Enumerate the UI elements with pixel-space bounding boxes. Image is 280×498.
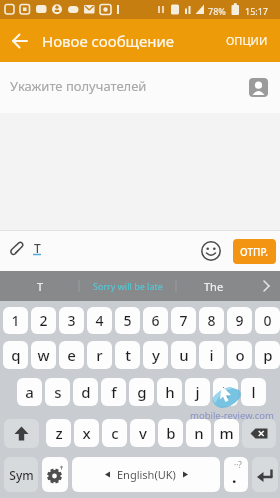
button[interactable]: z — [46, 419, 71, 447]
staticText: f — [111, 382, 117, 402]
button[interactable] — [4, 419, 39, 448]
button[interactable]: d — [73, 378, 98, 406]
staticText: y — [152, 345, 160, 365]
button[interactable]: 2 — [31, 307, 56, 334]
button[interactable]: e — [59, 341, 84, 369]
button[interactable]: p — [255, 341, 280, 369]
staticText: 9 — [235, 311, 244, 330]
button[interactable]: o — [227, 341, 252, 369]
button[interactable] — [252, 457, 278, 492]
button[interactable]: Укажите получателей — [0, 62, 280, 113]
button[interactable] — [4, 237, 30, 263]
staticText: j — [195, 382, 200, 402]
staticText: Sym — [9, 467, 34, 483]
staticText: 15:17 — [245, 5, 269, 17]
button[interactable]: y — [143, 341, 168, 369]
staticText: w — [37, 345, 50, 365]
staticText: d — [81, 382, 91, 402]
staticText: p — [263, 345, 273, 365]
staticText: 3 — [67, 311, 76, 330]
staticText: l — [251, 382, 256, 402]
button[interactable]: n — [186, 419, 211, 447]
button[interactable]: 8 — [199, 307, 224, 334]
staticText: mobile-review.com — [190, 409, 274, 422]
staticText: . — [232, 466, 237, 488]
staticText: 8 — [207, 311, 216, 330]
button[interactable]: x — [74, 419, 99, 447]
button[interactable]: a — [17, 378, 42, 406]
button[interactable]: u — [171, 341, 196, 369]
button[interactable]: 1 — [3, 307, 28, 334]
staticText: ОПЦИИ — [226, 33, 268, 48]
button[interactable]: k — [213, 378, 238, 406]
staticText: v — [139, 423, 147, 443]
staticText: k — [221, 382, 230, 402]
staticText: Sorry will be late — [93, 280, 163, 292]
staticText: ОТПР. — [240, 245, 269, 259]
button[interactable]: 6 — [143, 307, 168, 334]
staticText: 7 — [179, 311, 188, 330]
button[interactable]: j — [185, 378, 210, 406]
button[interactable]: f — [101, 378, 126, 406]
button[interactable]: m — [214, 419, 239, 447]
button[interactable]: 4 — [87, 307, 112, 334]
staticText: b — [166, 423, 176, 443]
staticText: The — [204, 279, 224, 294]
button[interactable]: T — [0, 271, 80, 301]
button[interactable]: The — [176, 271, 252, 301]
staticText: English(UK) — [117, 467, 176, 482]
button[interactable]: ОПЦИИ — [222, 29, 272, 52]
staticText: g — [137, 382, 147, 402]
staticText: s — [54, 382, 62, 402]
button[interactable] — [4, 25, 36, 57]
staticText: z — [55, 423, 63, 443]
button[interactable]: 3 — [59, 307, 84, 334]
button[interactable]: v — [130, 419, 155, 447]
button[interactable]: r — [87, 341, 112, 369]
button[interactable] — [42, 457, 68, 492]
staticText: o — [235, 345, 245, 365]
staticText: 1 — [11, 311, 20, 330]
button[interactable]: g — [129, 378, 154, 406]
button[interactable]: i — [199, 341, 224, 369]
staticText: 4 — [95, 311, 104, 330]
button[interactable] — [249, 78, 268, 97]
staticText: n — [194, 423, 204, 443]
button[interactable]: 5 — [115, 307, 140, 334]
staticText: 5 — [123, 311, 132, 330]
staticText: i — [209, 345, 214, 365]
button[interactable]: Sym — [4, 457, 38, 492]
button[interactable] — [197, 237, 225, 265]
staticText: Новое сообщение — [42, 31, 175, 51]
button[interactable]: s — [45, 378, 70, 406]
staticText: T — [34, 240, 41, 256]
button[interactable]: ОТПР. — [233, 239, 276, 264]
staticText: ··? — [234, 459, 242, 470]
button[interactable]: Sorry will be late — [80, 271, 176, 301]
staticText: m — [219, 423, 234, 443]
staticText: r — [96, 345, 103, 365]
staticText: 2 — [39, 311, 48, 330]
button[interactable]: ··? — [224, 457, 248, 492]
button[interactable]: English(UK) — [72, 457, 220, 492]
button[interactable]: h — [157, 378, 182, 406]
button[interactable]: w — [31, 341, 56, 369]
staticText: 0 — [263, 311, 272, 330]
staticText: 78% — [208, 5, 226, 17]
button[interactable] — [242, 419, 276, 448]
staticText: c — [111, 423, 119, 443]
staticText: Укажите получателей — [10, 77, 147, 95]
button[interactable]: b — [158, 419, 183, 447]
staticText: q — [11, 345, 21, 365]
staticText: x — [82, 423, 91, 443]
button[interactable]: l — [241, 378, 266, 406]
staticText: t — [125, 345, 131, 365]
button[interactable]: 7 — [171, 307, 196, 334]
button[interactable]: q — [3, 341, 28, 369]
button[interactable]: 9 — [227, 307, 252, 334]
button[interactable]: t — [115, 341, 140, 369]
button[interactable]: 0 — [255, 307, 280, 334]
button[interactable]: T — [26, 237, 48, 259]
staticText: h — [165, 382, 175, 402]
button[interactable]: c — [102, 419, 127, 447]
